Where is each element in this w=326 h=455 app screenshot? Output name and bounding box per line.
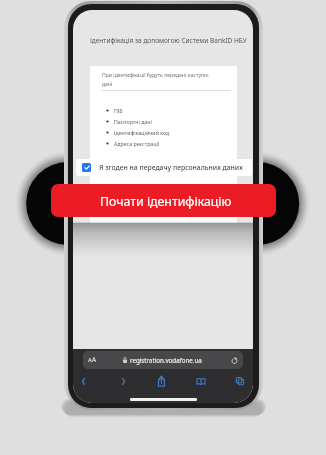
staticText: ПІБ bbox=[114, 107, 123, 114]
staticText: Я згоден на передачу персональних даних bbox=[99, 163, 243, 172]
staticText: Почати ідентифікацію bbox=[100, 193, 232, 210]
staticText: Паспортні дані bbox=[114, 118, 152, 125]
button[interactable]: Reload bbox=[229, 355, 240, 366]
staticText: Ідентифікація за допомогою Системи BankI… bbox=[90, 36, 247, 45]
button[interactable]: Bookmarks bbox=[192, 372, 210, 390]
staticText: Ідентифікаційний код bbox=[114, 129, 170, 136]
staticText: Адреса реєстрації bbox=[114, 140, 160, 147]
button[interactable]: ᴀA bbox=[83, 351, 243, 369]
staticText: При ідентифікації будуть передані наступ… bbox=[102, 72, 214, 87]
staticText: ᴀA bbox=[88, 355, 97, 365]
button[interactable]: Forward bbox=[114, 372, 132, 390]
staticText: registration.vodafone.ua bbox=[130, 356, 202, 364]
button[interactable]: Tabs bbox=[231, 372, 249, 390]
button[interactable]: Я згоден на передачу персональних даних bbox=[76, 159, 252, 176]
button[interactable]: Share bbox=[152, 372, 170, 390]
button[interactable]: Почати ідентифікацію bbox=[51, 184, 276, 217]
button[interactable]: Back bbox=[74, 372, 92, 390]
